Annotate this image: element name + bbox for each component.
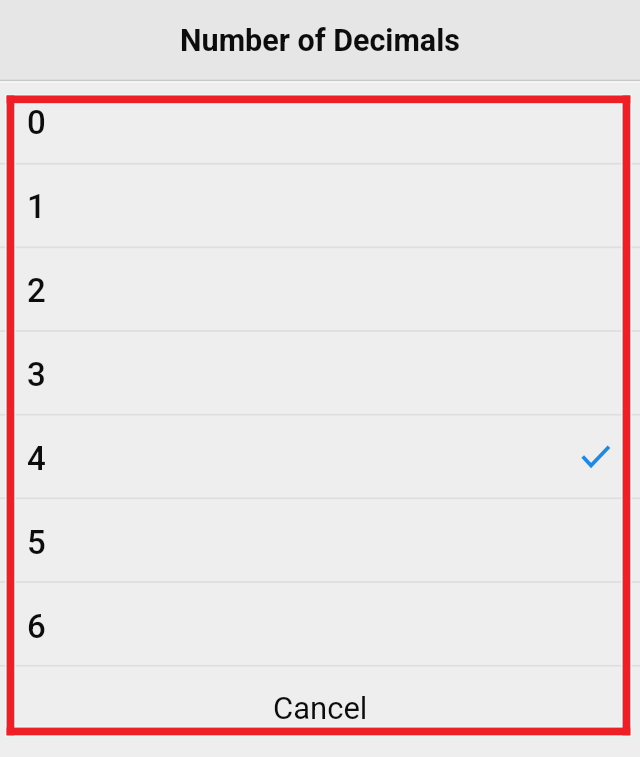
button[interactable]: 1	[0, 164, 640, 248]
staticText: 6	[27, 607, 46, 646]
other: Selected	[580, 442, 612, 474]
button[interactable]: 4	[0, 416, 640, 500]
staticText: 1	[27, 187, 46, 226]
button[interactable]: 5	[0, 500, 640, 584]
staticText: Number of Decimals	[180, 23, 460, 59]
button[interactable]: 2	[0, 248, 640, 332]
button[interactable]: 6	[0, 584, 640, 668]
button[interactable]: Cancel	[0, 668, 640, 757]
staticText: 5	[27, 523, 46, 562]
staticText: 4	[27, 439, 46, 478]
staticText: 2	[27, 271, 46, 310]
button[interactable]: 0	[0, 80, 640, 164]
staticText: 0	[27, 103, 46, 142]
staticText: Cancel	[273, 690, 368, 726]
button[interactable]: 3	[0, 332, 640, 416]
staticText: 3	[27, 355, 46, 394]
